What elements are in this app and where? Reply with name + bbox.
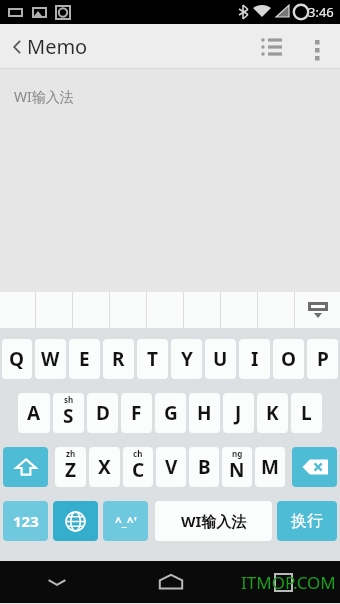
staticText: R [112, 346, 125, 372]
button[interactable]: ng [222, 447, 252, 487]
staticText: Q [9, 346, 25, 372]
staticText: ch [133, 448, 143, 459]
staticText: 3:46 [308, 3, 334, 21]
button[interactable]: I [239, 339, 270, 379]
staticText: Z [65, 457, 77, 483]
button[interactable]: D [87, 393, 118, 433]
button[interactable]: H [189, 393, 220, 433]
button[interactable]: O [273, 339, 304, 379]
staticText: 123 [13, 511, 39, 531]
staticText: O [281, 346, 297, 372]
button[interactable]: 123 [3, 501, 48, 541]
button[interactable]: K [257, 393, 288, 433]
staticText: K [266, 400, 279, 426]
button[interactable]: Y [171, 339, 202, 379]
button[interactable]: 换行 [277, 501, 337, 541]
button[interactable]: More options [294, 24, 340, 69]
button[interactable]: W [35, 339, 66, 379]
button[interactable]: Shift [3, 447, 48, 487]
staticText: M [261, 454, 279, 480]
staticText: D [96, 400, 110, 426]
button[interactable] [295, 292, 340, 328]
staticText: B [198, 454, 211, 480]
staticText: 换行 [291, 511, 323, 531]
staticText: T [147, 346, 158, 372]
button[interactable]: sh [53, 393, 84, 433]
staticText: A [27, 400, 41, 426]
staticText: V [165, 454, 178, 480]
staticText: X [98, 454, 111, 480]
button[interactable]: F [121, 393, 152, 433]
staticText: ng [232, 448, 243, 459]
button[interactable]: V [156, 447, 186, 487]
button[interactable]: G [155, 393, 186, 433]
staticText: Memo [27, 33, 88, 60]
button[interactable]: U [205, 339, 236, 379]
button[interactable]: ^_^' [103, 501, 148, 541]
staticText: zh [66, 448, 76, 459]
button[interactable]: M [255, 447, 285, 487]
staticText: G [164, 400, 178, 426]
staticText: E [79, 346, 90, 372]
button[interactable]: A [18, 393, 50, 433]
button[interactable]: Recent apps [227, 561, 340, 603]
staticText: WI输入法 [14, 87, 74, 106]
staticText: H [197, 400, 212, 426]
button[interactable]: zh [55, 447, 86, 487]
button[interactable]: List view [248, 24, 294, 69]
button[interactable]: WI输入法 [155, 501, 272, 541]
button[interactable]: Home [114, 561, 227, 603]
button[interactable]: T [137, 339, 168, 379]
button[interactable]: Backspace [292, 447, 337, 487]
button[interactable]: J [223, 393, 254, 433]
staticText: P [317, 346, 329, 372]
button[interactable]: ch [123, 447, 153, 487]
button[interactable]: P [307, 339, 338, 379]
staticText: U [213, 346, 228, 372]
staticText: Y [181, 346, 193, 372]
staticText: WI输入法 [181, 511, 247, 531]
button[interactable]: Switch language [53, 501, 98, 541]
staticText: N [229, 457, 245, 483]
button[interactable]: X [89, 447, 120, 487]
button[interactable]: E [69, 339, 100, 379]
staticText: F [131, 400, 142, 426]
staticText: sh [64, 394, 74, 405]
button[interactable]: R [103, 339, 134, 379]
staticText: I [251, 346, 259, 372]
button[interactable]: Memo [6, 33, 92, 60]
button[interactable]: Q [2, 339, 32, 379]
staticText: L [301, 400, 312, 426]
button[interactable]: L [291, 393, 322, 433]
staticText: J [235, 400, 242, 426]
button[interactable]: B [189, 447, 219, 487]
staticText: C [132, 457, 145, 483]
button[interactable]: Back [0, 561, 114, 603]
staticText: ^_^' [115, 513, 137, 529]
staticText: S [63, 403, 74, 429]
staticText: ITMOP.COM [241, 571, 336, 594]
staticText: W [41, 346, 60, 372]
